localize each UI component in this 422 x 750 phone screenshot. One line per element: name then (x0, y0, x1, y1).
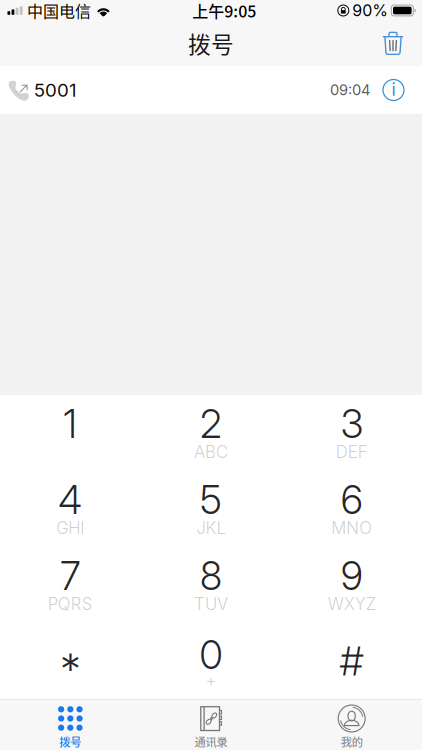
staticText: PQRS (48, 594, 93, 614)
staticText: 7 (60, 553, 80, 599)
staticText: i (391, 79, 395, 100)
button[interactable]: 8 (141, 547, 281, 623)
staticText: 5001 (34, 79, 77, 101)
staticText: DEF (336, 442, 368, 462)
staticText: GHI (56, 518, 84, 538)
staticText: 通讯录 (194, 733, 227, 750)
staticText: 0 (199, 632, 222, 678)
staticText: 拨号 (188, 27, 234, 59)
staticText: 9 (341, 553, 363, 599)
staticText: # (340, 637, 364, 685)
button[interactable]: 3 (281, 395, 422, 471)
staticText: + (205, 670, 216, 690)
staticText: JKL (196, 518, 225, 538)
staticText: 拨号 (59, 733, 81, 750)
button[interactable]: Delete call log (371, 21, 415, 65)
staticText: ABC (194, 442, 228, 462)
staticText: 2 (200, 401, 222, 447)
staticText: 1 (63, 401, 77, 447)
button[interactable]: 我的 (281, 700, 422, 750)
button[interactable]: # (281, 623, 422, 699)
staticText: 6 (341, 477, 363, 523)
staticText: 5 (200, 477, 222, 523)
staticText: WXYZ (328, 594, 376, 614)
staticText: 上午9:05 (192, 0, 256, 22)
button[interactable]: 9 (281, 547, 422, 623)
button[interactable]: 通讯录 (141, 700, 281, 750)
button[interactable]: 6 (281, 471, 422, 547)
staticText: MNO (331, 518, 372, 538)
button[interactable]: 2 (141, 395, 281, 471)
staticText: * (60, 643, 81, 695)
staticText: 我的 (341, 733, 363, 750)
staticText: 90% (352, 1, 388, 20)
staticText: 09:04 (330, 81, 370, 99)
staticText: 3 (341, 401, 363, 447)
staticText: 中国电信 (27, 0, 91, 22)
button[interactable]: 4 (0, 471, 141, 547)
button[interactable]: 7 (0, 547, 141, 623)
button[interactable]: Call details (374, 65, 413, 114)
button[interactable]: 5001 (0, 65, 422, 114)
staticText: 8 (200, 553, 222, 599)
button[interactable]: * (0, 623, 141, 699)
button[interactable]: 拨号 (0, 700, 141, 750)
staticText: TUV (194, 594, 228, 614)
button[interactable]: 1 (0, 395, 141, 471)
staticText: 4 (58, 477, 82, 523)
button[interactable]: 0 (141, 623, 281, 699)
button[interactable]: 5 (141, 471, 281, 547)
